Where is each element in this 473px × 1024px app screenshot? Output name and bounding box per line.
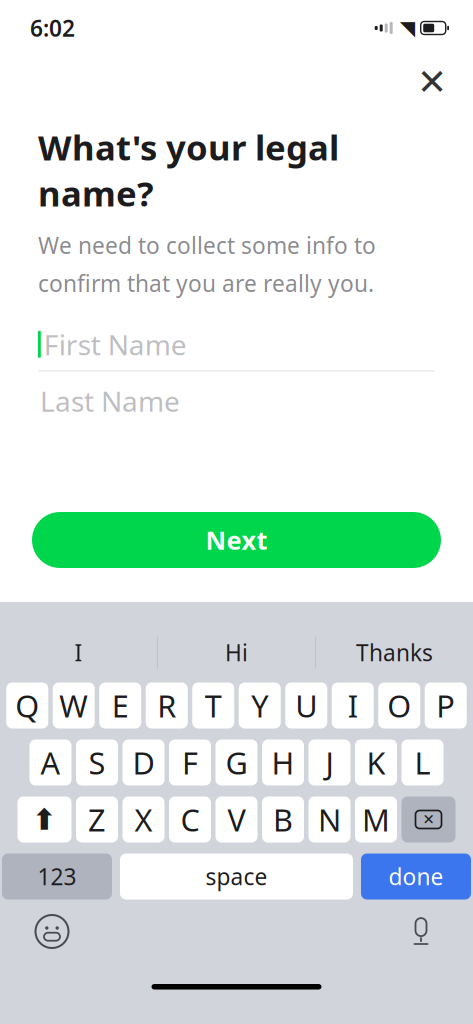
staticText: U [295,685,317,726]
staticText: H [271,742,294,783]
button[interactable]: L [401,739,443,785]
staticText: ✕ [417,62,447,102]
button[interactable]: M [355,796,397,842]
button[interactable]: D [122,739,164,785]
staticText: space [205,861,267,891]
button[interactable]: F [169,739,211,785]
staticText: W [59,685,88,726]
staticText: V [227,799,245,840]
button[interactable]: Z [76,796,118,842]
staticText: ⬆ [32,803,57,836]
staticText: Next [205,523,267,557]
button[interactable]: I [0,628,157,676]
staticText: S [88,742,105,783]
staticText: 6:02 [30,13,75,43]
staticText: L [414,742,430,783]
staticText: ✕ [422,811,434,828]
staticText: 123 [37,861,76,891]
button[interactable]: Emoji keyboard [30,909,74,953]
button[interactable]: V [215,796,257,842]
button[interactable]: R [146,682,188,728]
button[interactable]: Dictation [399,909,443,953]
staticText: We need to collect some info to [38,230,376,260]
button[interactable]: Hi [158,628,315,676]
staticText: Q [15,685,39,726]
button[interactable]: Y [239,682,281,728]
button[interactable]: G [215,739,257,785]
button[interactable]: Shift [17,796,71,842]
button[interactable]: First Name [38,318,435,370]
staticText: What's your legal name? [38,124,339,216]
button[interactable]: C [169,796,211,842]
staticText: P [436,685,455,726]
button[interactable]: done [361,853,471,899]
button[interactable]: space [120,853,353,899]
staticText: Last Name [40,382,180,419]
staticText: Thanks [356,637,433,667]
staticText: D [132,742,154,783]
staticText: X [134,799,152,840]
staticText: ◥ [400,17,415,39]
button[interactable]: S [76,739,118,785]
button[interactable]: T [192,682,234,728]
button[interactable]: Next [32,512,441,568]
staticText: E [112,685,129,726]
button[interactable]: B [262,796,304,842]
staticText: Y [251,685,268,726]
staticText: R [157,685,176,726]
staticText: done [388,861,443,891]
button[interactable]: Q [6,682,48,728]
staticText: O [387,685,411,726]
button[interactable]: O [378,682,420,728]
button[interactable]: U [285,682,327,728]
staticText: M [362,799,390,840]
staticText: C [180,799,199,840]
staticText: I [348,685,358,726]
button[interactable]: W [53,682,95,728]
button[interactable]: J [308,739,350,785]
button[interactable]: E [99,682,141,728]
button[interactable]: Delete [401,796,455,842]
button[interactable]: Thanks [316,628,473,676]
staticText: J [325,742,333,783]
button[interactable]: 123 [2,853,112,899]
button[interactable]: Last Name [38,372,435,430]
button[interactable]: X [122,796,164,842]
staticText: G [225,742,247,783]
button[interactable]: H [262,739,304,785]
staticText: I [74,637,82,667]
button[interactable]: A [29,739,71,785]
staticText: A [40,742,60,783]
staticText: F [182,742,198,783]
button[interactable]: Close [409,59,455,105]
button[interactable]: N [308,796,350,842]
button[interactable]: P [425,682,467,728]
staticText: B [273,799,293,840]
staticText: T [205,685,222,726]
staticText: K [366,742,385,783]
staticText: N [318,799,341,840]
staticText: confirm that you are really you. [38,268,374,298]
staticText: Z [88,799,106,840]
staticText: Hi [225,637,248,667]
button[interactable]: K [355,739,397,785]
staticText: First Name [44,326,187,363]
button[interactable]: I [332,682,374,728]
